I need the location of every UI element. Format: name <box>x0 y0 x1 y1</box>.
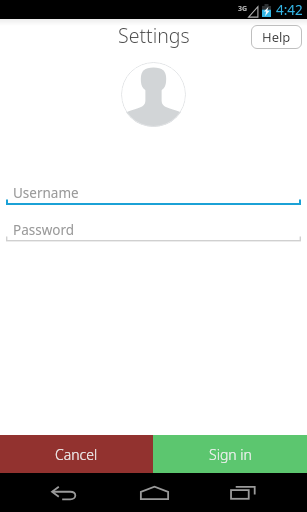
button[interactable]: Recents <box>205 473 307 512</box>
button[interactable]: Back <box>0 473 103 512</box>
staticText: Sign in <box>209 445 252 464</box>
staticText: Password <box>13 221 75 239</box>
button[interactable]: Cancel <box>0 435 153 473</box>
staticText: Cancel <box>55 445 98 464</box>
staticText: Settings <box>118 22 190 49</box>
staticText: 4:42 <box>276 1 303 19</box>
button[interactable]: Help <box>251 25 302 49</box>
staticText: 3G <box>238 4 248 14</box>
staticText: Help <box>262 28 291 46</box>
staticText: Username <box>13 184 79 202</box>
button[interactable]: Home <box>103 473 205 512</box>
button[interactable]: Username <box>6 182 301 208</box>
button[interactable]: Password <box>6 219 301 245</box>
button[interactable]: Sign in <box>153 435 307 473</box>
